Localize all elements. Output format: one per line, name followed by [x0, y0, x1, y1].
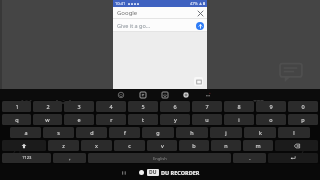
- button[interactable]: Shift: [2, 140, 46, 151]
- button[interactable]: k: [244, 127, 276, 138]
- button[interactable]: d: [76, 127, 107, 138]
- staticText: 4: [109, 103, 113, 110]
- staticText: b: [192, 142, 196, 149]
- staticText: ?123: [22, 155, 32, 161]
- button[interactable]: f: [109, 127, 140, 138]
- button[interactable]: 7: [192, 101, 222, 112]
- staticText: r: [110, 116, 113, 123]
- staticText: e: [77, 116, 81, 123]
- staticText: z: [62, 142, 65, 149]
- staticText: f: [124, 129, 126, 136]
- button[interactable]: i: [224, 114, 254, 125]
- button[interactable]: 3: [64, 101, 94, 112]
- button[interactable]: e: [64, 114, 94, 125]
- staticText: h: [190, 129, 194, 136]
- staticText: w: [45, 116, 50, 123]
- button[interactable]: c: [114, 140, 145, 151]
- button[interactable]: 0: [288, 101, 318, 112]
- staticText: o: [269, 116, 273, 123]
- button[interactable]: x: [81, 140, 112, 151]
- button[interactable]: Emoji: [116, 90, 125, 99]
- button[interactable]: 2: [33, 101, 62, 112]
- staticText: j: [225, 129, 227, 136]
- staticText: 10:41: [115, 1, 126, 6]
- staticText: p: [301, 116, 305, 123]
- staticText: g: [156, 129, 160, 136]
- staticText: t: [142, 116, 144, 123]
- staticText: d: [90, 129, 94, 136]
- staticText: .: [249, 155, 251, 162]
- staticText: m: [255, 142, 261, 149]
- button[interactable]: b: [179, 140, 209, 151]
- button[interactable]: Give it a go...: [113, 19, 207, 32]
- button[interactable]: q: [2, 114, 31, 125]
- staticText: k: [259, 129, 262, 136]
- staticText: x: [95, 142, 98, 149]
- staticText: i: [238, 116, 240, 123]
- staticText: 9: [269, 103, 273, 110]
- button[interactable]: 8: [224, 101, 254, 112]
- button[interactable]: 4: [96, 101, 126, 112]
- staticText: 3: [77, 103, 81, 110]
- staticText: 7: [295, 136, 308, 162]
- staticText: DU RECORDER: [161, 169, 200, 176]
- button[interactable]: Space: [88, 153, 231, 163]
- staticText: v: [161, 142, 164, 149]
- button[interactable]: Compose: [194, 77, 203, 86]
- staticText: 1: [15, 103, 19, 110]
- button[interactable]: t: [128, 114, 158, 125]
- button[interactable]: More options: [203, 90, 212, 99]
- staticText: Give it a go...: [117, 22, 151, 29]
- staticText: English: [153, 156, 167, 161]
- button[interactable]: GIF: [138, 90, 147, 99]
- button[interactable]: a: [10, 127, 41, 138]
- button[interactable]: n: [211, 140, 241, 151]
- button[interactable]: r: [96, 114, 126, 125]
- button[interactable]: .: [233, 153, 266, 163]
- staticText: u: [205, 116, 209, 123]
- staticText: s: [57, 129, 60, 136]
- button[interactable]: Close: [196, 9, 205, 18]
- button[interactable]: Enter: [268, 153, 318, 163]
- button[interactable]: y: [160, 114, 190, 125]
- button[interactable]: 9: [256, 101, 286, 112]
- button[interactable]: m: [243, 140, 273, 151]
- button[interactable]: v: [147, 140, 177, 151]
- staticText: 4: [11, 136, 24, 162]
- button[interactable]: l: [278, 127, 310, 138]
- staticText: l: [293, 129, 295, 136]
- button[interactable]: u: [192, 114, 222, 125]
- button[interactable]: h: [176, 127, 208, 138]
- staticText: 5: [141, 103, 145, 110]
- button[interactable]: j: [210, 127, 242, 138]
- staticText: DU: [149, 169, 157, 176]
- staticText: n: [224, 142, 228, 149]
- staticText: 8: [237, 103, 241, 110]
- button[interactable]: 1: [2, 101, 31, 112]
- staticText: Google: [117, 9, 138, 17]
- staticText: 47%: [190, 1, 198, 6]
- button[interactable]: z: [48, 140, 79, 151]
- button[interactable]: Send: [196, 22, 204, 30]
- button[interactable]: o: [256, 114, 286, 125]
- button[interactable]: Settings: [181, 90, 190, 99]
- staticText: a: [24, 129, 28, 136]
- button[interactable]: p: [288, 114, 318, 125]
- button[interactable]: w: [33, 114, 62, 125]
- button[interactable]: s: [43, 127, 74, 138]
- button[interactable]: ?123: [2, 153, 51, 163]
- button[interactable]: 5: [128, 101, 158, 112]
- staticText: c: [128, 142, 131, 149]
- button[interactable]: g: [142, 127, 174, 138]
- button[interactable]: Backspace: [275, 140, 318, 151]
- staticText: 0: [301, 103, 305, 110]
- staticText: 7: [205, 103, 209, 110]
- button[interactable]: 6: [160, 101, 190, 112]
- button[interactable]: ,: [53, 153, 86, 163]
- staticText: 2: [46, 103, 50, 110]
- staticText: 6: [173, 103, 177, 110]
- staticText: ,: [69, 155, 71, 162]
- button[interactable]: Sticker: [160, 90, 169, 99]
- staticText: q: [15, 116, 19, 123]
- staticText: y: [174, 116, 177, 123]
